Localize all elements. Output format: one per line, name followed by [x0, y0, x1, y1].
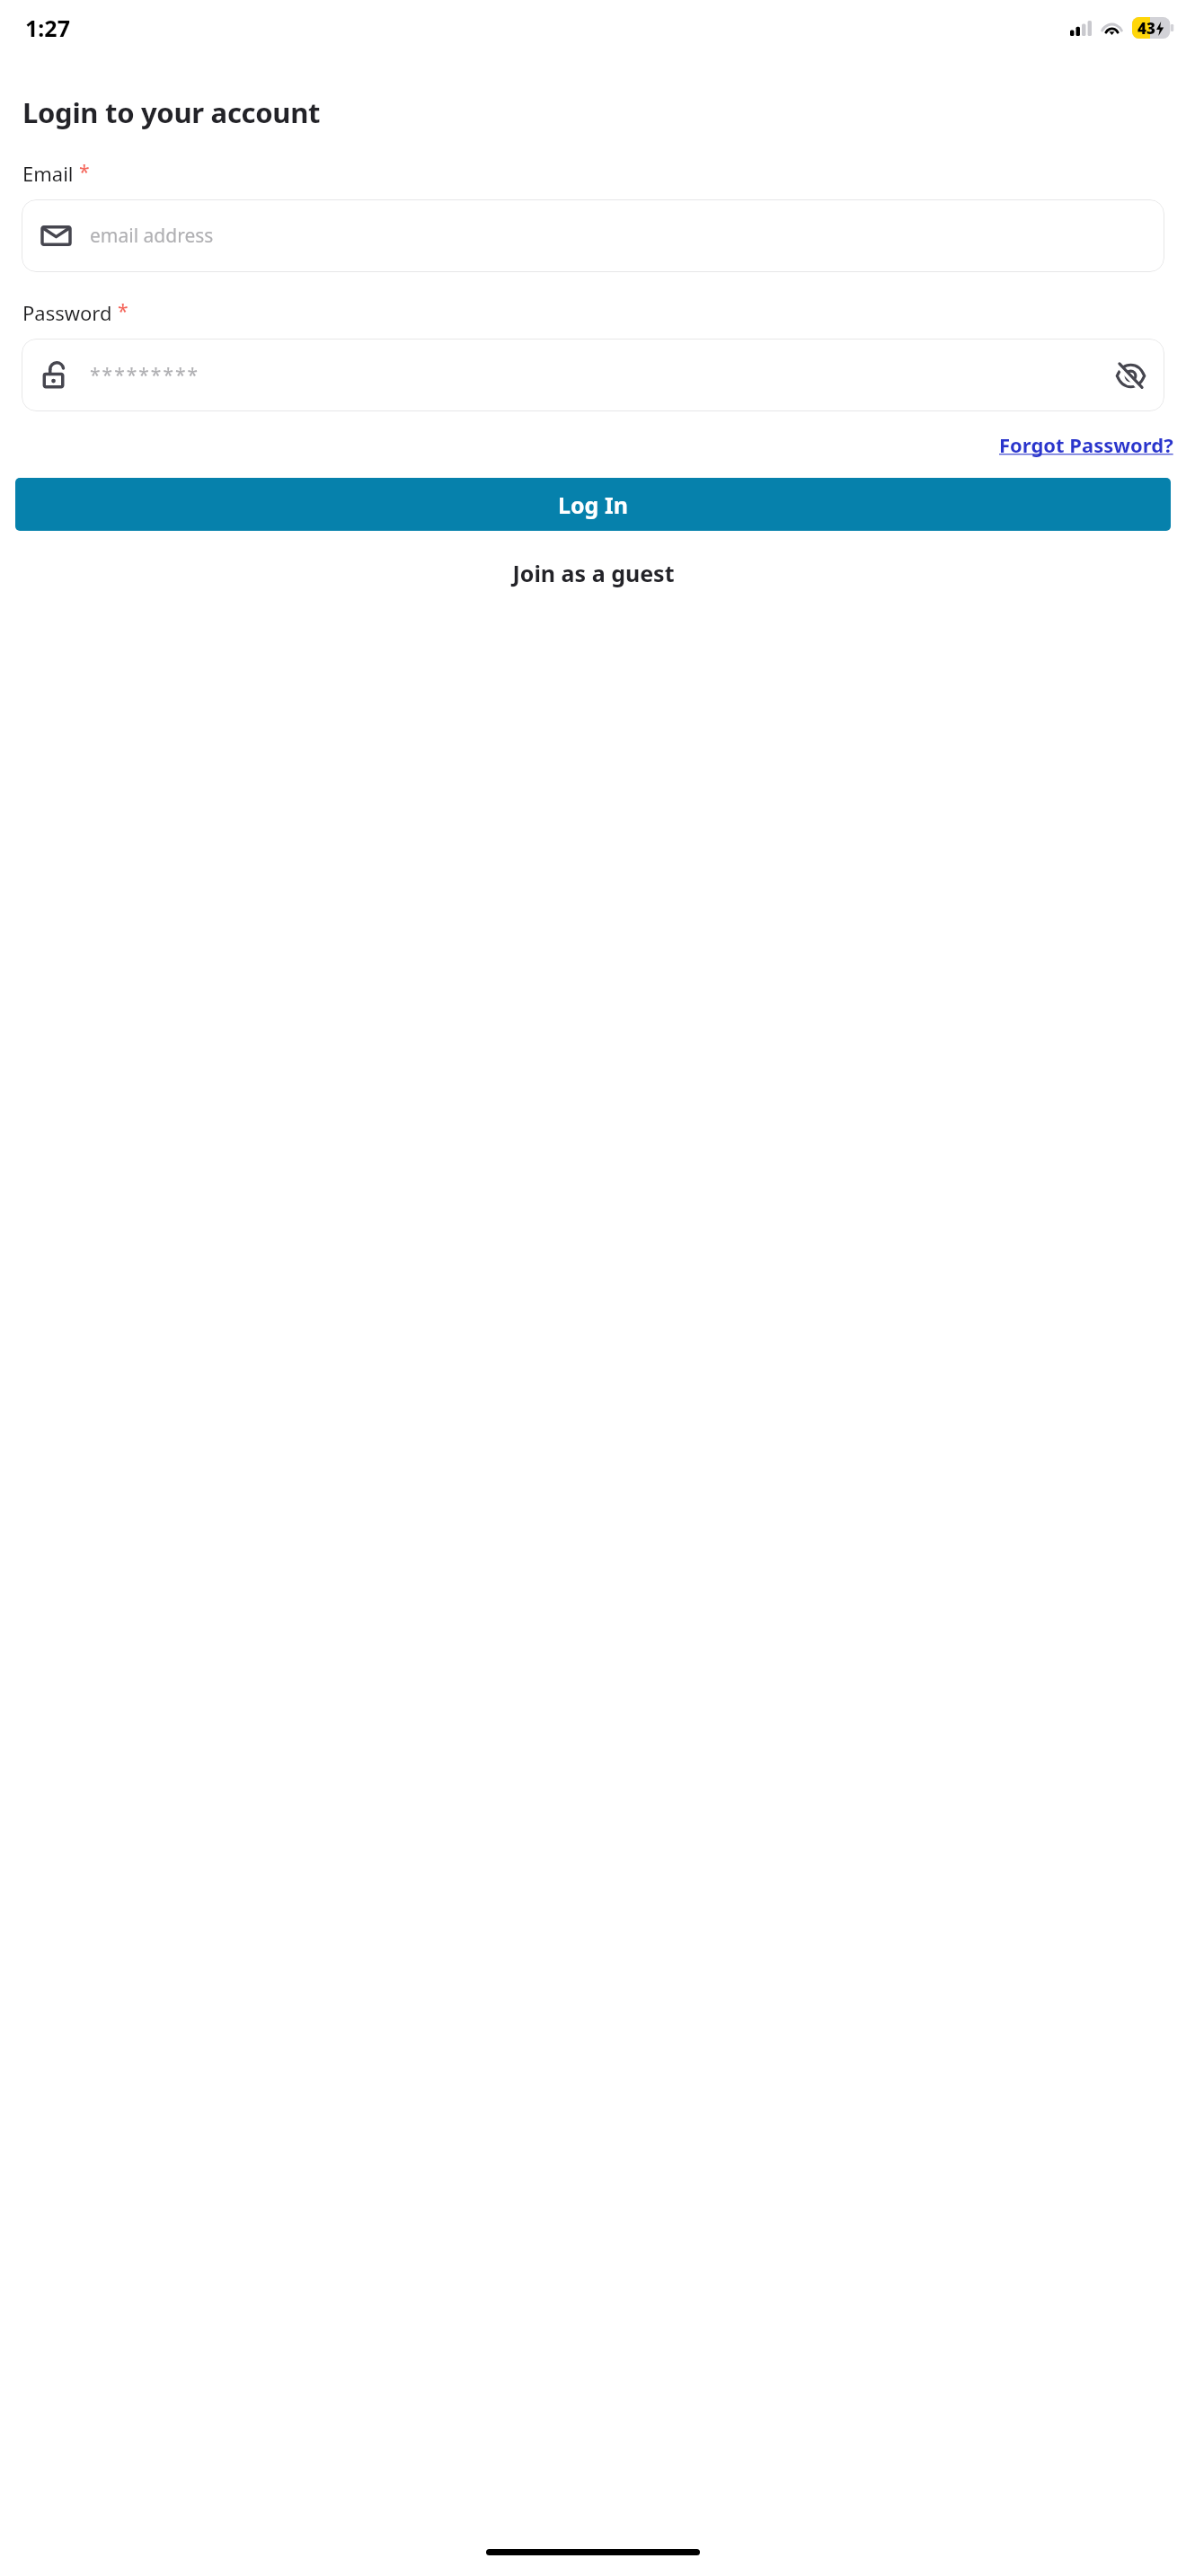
- button[interactable]: Show password: [1105, 350, 1155, 401]
- staticText: *: [118, 298, 128, 324]
- staticText: Login to your account: [22, 93, 321, 131]
- staticText: Log In: [558, 490, 628, 520]
- button[interactable]: Password input: [22, 339, 1164, 411]
- button[interactable]: Forgot Password?: [996, 428, 1177, 462]
- button[interactable]: Email address input: [22, 199, 1164, 272]
- staticText: 43: [1137, 18, 1155, 39]
- button[interactable]: Log In: [15, 478, 1171, 531]
- staticText: *********: [90, 362, 200, 388]
- staticText: Join as a guest: [512, 558, 675, 588]
- button[interactable]: Join as a guest: [0, 551, 1186, 595]
- staticText: Password: [22, 299, 112, 326]
- staticText: Email: [22, 160, 74, 187]
- staticText: Forgot Password?: [999, 431, 1173, 458]
- staticText: 1:27: [25, 13, 70, 43]
- staticText: email address: [90, 223, 214, 249]
- staticText: *: [79, 159, 90, 185]
